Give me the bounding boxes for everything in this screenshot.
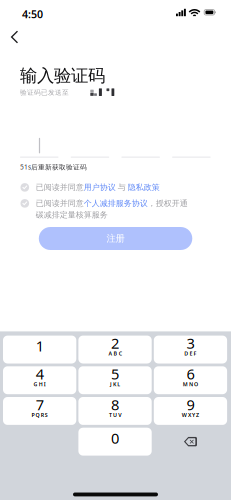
staticText: 与 (116, 182, 128, 192)
staticText: 验证码已发送至 (20, 88, 69, 97)
staticText: 6 (186, 364, 194, 384)
staticText: 输入验证码 (20, 65, 105, 86)
staticText: 51s后重新获取验证码 (20, 162, 87, 171)
button[interactable]: 已阅读并同意 (20, 198, 188, 220)
staticText: 1 (36, 336, 44, 356)
staticText: 0 (111, 428, 119, 448)
button[interactable]: Back (1, 24, 27, 50)
button[interactable]: 1 (3, 336, 76, 363)
staticText: 8 (111, 395, 119, 414)
staticText: 用户协议 (84, 182, 116, 192)
button[interactable]: 6 (154, 366, 227, 394)
staticText: 碳减排定量核算服务 (36, 210, 108, 220)
button[interactable]: 8 (78, 397, 152, 425)
button[interactable]: 2 (78, 336, 152, 363)
button[interactable]: 4 (3, 366, 76, 394)
staticText: 4 (36, 364, 44, 384)
staticText: PQRS (31, 411, 48, 418)
staticText: 4:50 (22, 7, 43, 21)
staticText: 5 (111, 364, 119, 384)
staticText: 注册 (106, 233, 124, 244)
button[interactable]: 7 (3, 397, 76, 425)
staticText: WXYZ (182, 411, 199, 418)
staticText: JKL (110, 381, 120, 388)
button[interactable]: Delete (154, 428, 227, 456)
staticText: MNO (183, 381, 198, 388)
button[interactable]: 9 (154, 397, 227, 425)
button[interactable]: 注册 (39, 227, 192, 250)
staticText: GHI (34, 381, 46, 388)
staticText: 7 (36, 395, 44, 414)
staticText: 2 (111, 333, 119, 353)
staticText: 个人减排服务协议 (84, 198, 148, 208)
staticText: 3 (186, 333, 194, 353)
staticText: ABC (108, 350, 122, 357)
staticText: 已阅读并同意 (36, 182, 84, 192)
staticText: TUV (109, 411, 121, 418)
staticText: DEF (184, 350, 197, 357)
staticText: 已阅读并同意 (36, 198, 84, 208)
button[interactable]: 5 (78, 366, 152, 394)
button[interactable]: 0 (78, 428, 152, 456)
button[interactable]: 已阅读并同意 (20, 182, 160, 192)
button[interactable]: 3 (154, 336, 227, 363)
staticText: 9 (186, 395, 194, 414)
staticText: ，授权开通 (148, 198, 188, 208)
staticText: 隐私政策 (128, 182, 160, 192)
